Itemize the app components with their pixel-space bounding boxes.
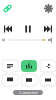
button[interactable]: bt — [40, 60, 56, 72]
staticText: Connected — [19, 90, 37, 95]
button[interactable]: cc — [40, 74, 56, 86]
button[interactable]: Previous track — [0, 22, 16, 36]
button[interactable]: Connected — [13, 90, 43, 95]
button[interactable]: Next track — [40, 22, 56, 36]
button[interactable]: Connected — [1, 2, 14, 15]
button[interactable]: hd — [21, 74, 37, 86]
button[interactable]: cast — [2, 74, 18, 86]
button[interactable]: eq — [21, 60, 37, 72]
button[interactable]: Settings — [42, 2, 55, 15]
button[interactable]: bars — [2, 60, 18, 72]
button[interactable]: Pause — [20, 22, 36, 36]
